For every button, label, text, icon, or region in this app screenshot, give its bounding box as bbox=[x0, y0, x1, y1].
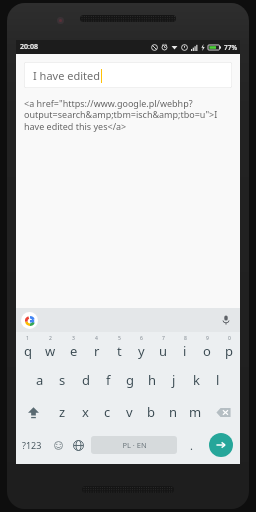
staticText: s bbox=[59, 371, 66, 389]
staticText: r bbox=[94, 342, 100, 360]
staticText: p bbox=[225, 342, 233, 360]
staticText: u bbox=[159, 342, 168, 360]
button[interactable]: 5 bbox=[108, 332, 130, 364]
staticText: PL · EN bbox=[122, 440, 147, 450]
button[interactable]: b bbox=[140, 396, 162, 428]
button[interactable]: z bbox=[51, 396, 74, 428]
staticText: j bbox=[172, 371, 176, 389]
button[interactable]: 7 bbox=[152, 332, 174, 364]
staticText: k bbox=[193, 371, 200, 389]
staticText: 4 bbox=[95, 335, 98, 342]
staticText: h bbox=[148, 371, 157, 389]
button[interactable]: 8 bbox=[174, 332, 196, 364]
button[interactable]: a bbox=[28, 364, 51, 396]
staticText: n bbox=[169, 403, 178, 421]
staticText: 8 bbox=[184, 335, 187, 342]
button[interactable]: c bbox=[96, 396, 118, 428]
button[interactable]: Change language bbox=[68, 428, 88, 462]
staticText: i bbox=[183, 342, 187, 360]
staticText: . bbox=[190, 438, 193, 453]
staticText: q bbox=[24, 342, 32, 360]
staticText: y bbox=[138, 342, 145, 360]
staticText: 7 bbox=[162, 335, 165, 342]
staticText: 9 bbox=[206, 335, 209, 342]
staticText: I have edited bbox=[33, 68, 100, 83]
staticText: d bbox=[82, 371, 90, 389]
staticText: x bbox=[82, 403, 89, 421]
staticText: 1 bbox=[26, 335, 29, 342]
staticText: 6 bbox=[140, 335, 143, 342]
button[interactable]: 9 bbox=[196, 332, 218, 364]
staticText: e bbox=[70, 342, 78, 360]
button[interactable]: PL · EN bbox=[91, 436, 177, 454]
staticText: b bbox=[147, 403, 155, 421]
staticText: <a href="https://www.google.pl/webhp?out… bbox=[24, 97, 232, 133]
staticText: z bbox=[59, 403, 66, 421]
staticText: 20:08 bbox=[20, 42, 38, 52]
button[interactable]: 0 bbox=[218, 332, 240, 364]
staticText: 3 bbox=[72, 335, 75, 342]
button[interactable]: 4 bbox=[85, 332, 108, 364]
button[interactable]: Google search bbox=[21, 312, 38, 329]
button[interactable]: Backspace bbox=[206, 396, 240, 428]
button[interactable]: 6 bbox=[130, 332, 152, 364]
staticText: 0 bbox=[228, 335, 231, 342]
staticText: g bbox=[126, 371, 134, 389]
staticText: o bbox=[203, 342, 211, 360]
button[interactable]: I have edited bbox=[24, 62, 232, 88]
staticText: 5 bbox=[118, 335, 121, 342]
button[interactable]: g bbox=[119, 364, 141, 396]
button[interactable]: n bbox=[162, 396, 184, 428]
staticText: a bbox=[36, 371, 44, 389]
button[interactable]: x bbox=[74, 396, 96, 428]
button[interactable]: Emoji bbox=[48, 428, 68, 462]
button[interactable]: Enter bbox=[209, 433, 233, 457]
button[interactable]: Shift bbox=[16, 396, 51, 428]
button[interactable]: 1 bbox=[16, 332, 39, 364]
button[interactable]: k bbox=[185, 364, 207, 396]
button[interactable]: 2 bbox=[39, 332, 62, 364]
staticText: c bbox=[104, 403, 111, 421]
button[interactable]: s bbox=[51, 364, 74, 396]
button[interactable]: l bbox=[207, 364, 229, 396]
staticText: w bbox=[45, 342, 56, 360]
staticText: 77% bbox=[224, 43, 237, 52]
staticText: f bbox=[106, 371, 111, 389]
staticText: ?123 bbox=[22, 439, 42, 451]
button[interactable]: ?123 bbox=[16, 428, 48, 462]
staticText: 2 bbox=[49, 335, 52, 342]
staticText: t bbox=[117, 342, 122, 360]
button[interactable]: d bbox=[74, 364, 97, 396]
button[interactable]: . bbox=[180, 428, 202, 462]
button[interactable]: v bbox=[118, 396, 140, 428]
button[interactable]: h bbox=[141, 364, 163, 396]
button[interactable]: j bbox=[163, 364, 185, 396]
button[interactable]: Voice input bbox=[219, 313, 233, 327]
button[interactable]: f bbox=[97, 364, 119, 396]
staticText: v bbox=[126, 403, 133, 421]
staticText: l bbox=[216, 371, 220, 389]
button[interactable]: m bbox=[184, 396, 206, 428]
button[interactable]: 3 bbox=[62, 332, 85, 364]
staticText: m bbox=[189, 403, 202, 421]
